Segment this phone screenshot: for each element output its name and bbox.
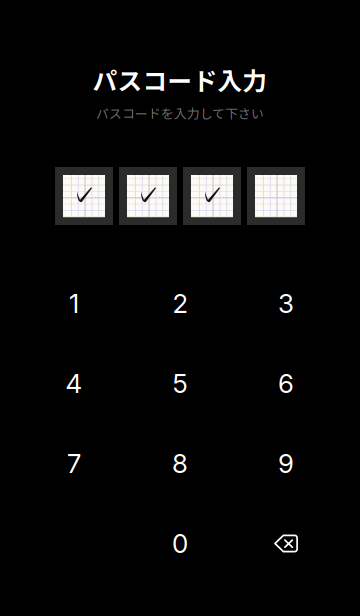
staticText: 7: [67, 448, 81, 479]
button[interactable]: 4: [21, 343, 127, 423]
button[interactable]: 5: [127, 343, 233, 423]
button[interactable]: 1: [21, 263, 127, 343]
staticText: パスコード入力: [92, 62, 267, 97]
button[interactable]: 9: [233, 423, 339, 503]
button[interactable]: 8: [127, 423, 233, 503]
button[interactable]: 3: [233, 263, 339, 343]
staticText: 8: [172, 448, 188, 479]
button[interactable]: 0: [127, 503, 233, 583]
staticText: 4: [65, 368, 82, 399]
staticText: 3: [278, 288, 294, 319]
staticText: 9: [278, 448, 294, 479]
button[interactable]: 7: [21, 423, 127, 503]
staticText: 1: [69, 288, 79, 319]
button[interactable]: 6: [233, 343, 339, 423]
staticText: パスコードを入力して下さい: [96, 104, 264, 122]
staticText: 0: [172, 528, 188, 559]
button[interactable]: Delete: [233, 503, 339, 583]
staticText: 6: [278, 368, 294, 399]
button[interactable]: 2: [127, 263, 233, 343]
staticText: 2: [172, 288, 187, 319]
staticText: 5: [172, 368, 187, 399]
